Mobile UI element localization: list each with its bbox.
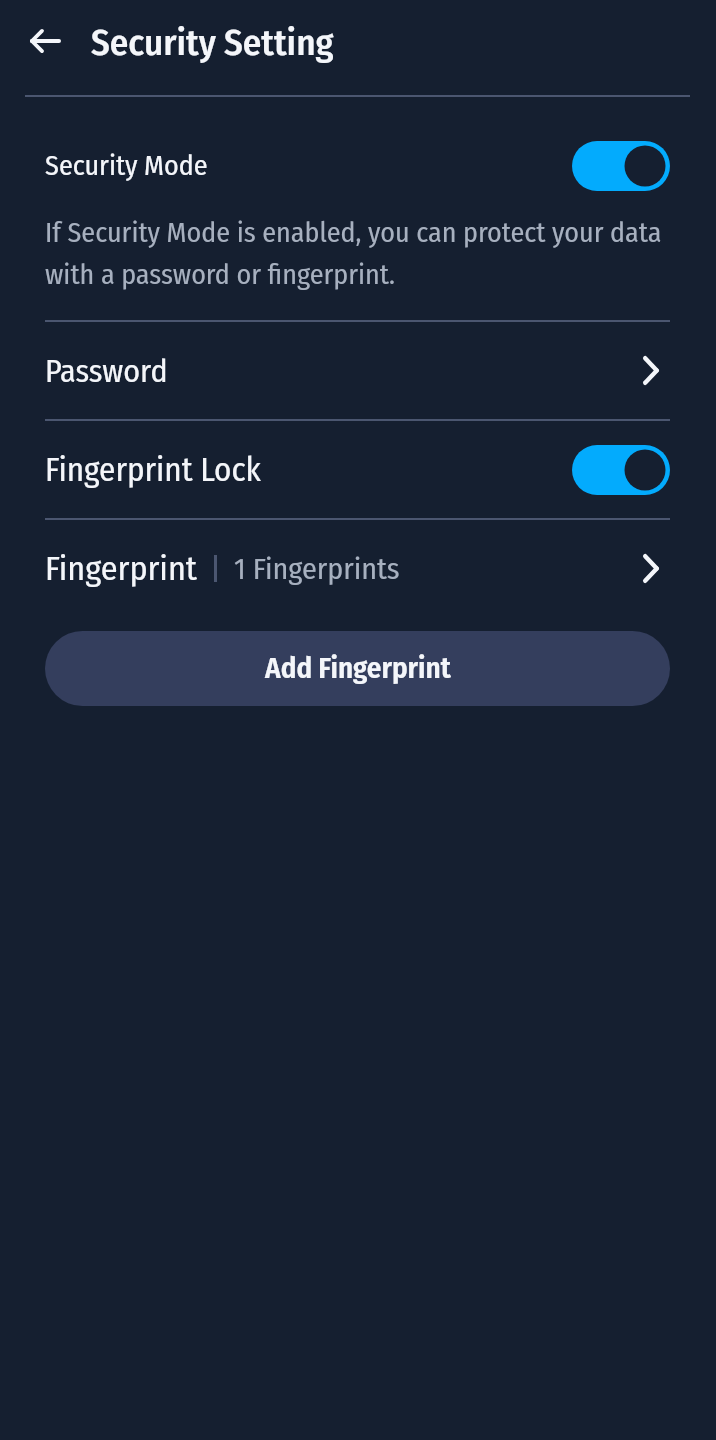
staticText: Fingerprint [45, 548, 197, 589]
button[interactable]: Fingerprint [0, 520, 716, 617]
staticText: Add Fingerprint [265, 651, 451, 686]
button[interactable]: Add Fingerprint [45, 631, 670, 706]
staticText: Fingerprint Lock [45, 450, 261, 490]
button[interactable]: Back [16, 12, 74, 70]
staticText: If Security Mode is enabled, you can pro… [45, 216, 702, 291]
staticText: 1 Fingerprints [234, 551, 400, 587]
staticText: Security Setting [91, 20, 334, 64]
staticText: Security Mode [45, 149, 208, 183]
button[interactable]: Security Mode [0, 128, 716, 204]
staticText: Password [45, 352, 168, 390]
button[interactable]: Password [0, 322, 716, 419]
button[interactable]: Fingerprint Lock [0, 421, 716, 518]
